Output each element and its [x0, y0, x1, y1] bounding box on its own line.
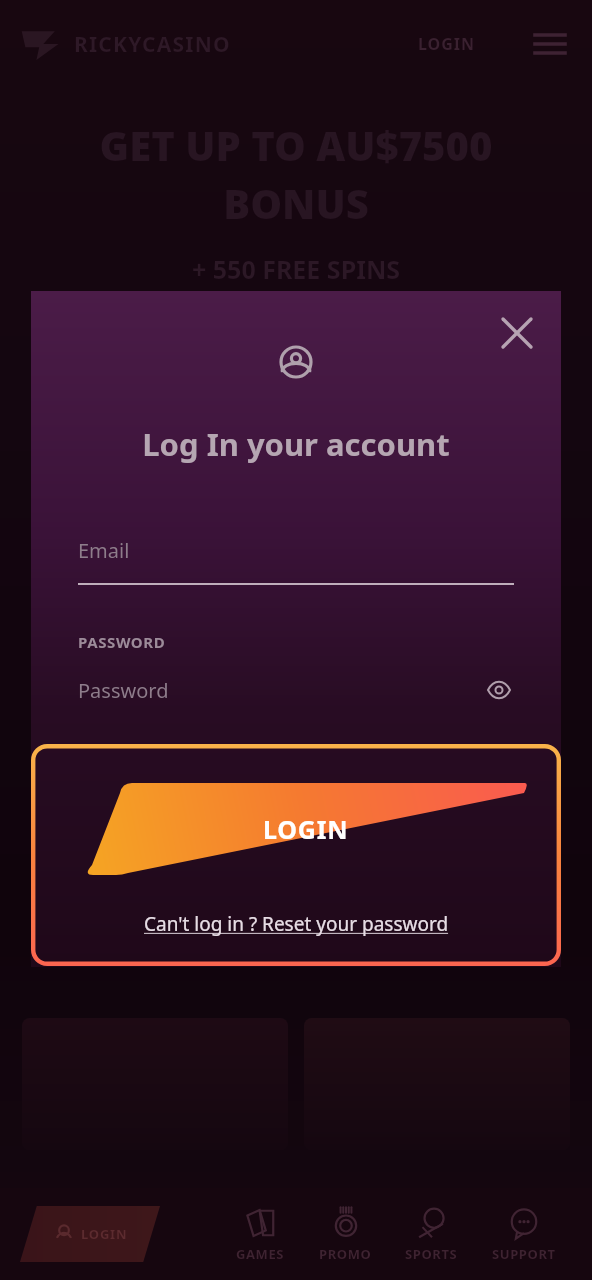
staticText: GAMES	[236, 1245, 285, 1263]
staticText: LOGIN	[263, 812, 349, 846]
button[interactable]: GAMES	[232, 1202, 289, 1267]
staticText: SPORTS	[405, 1245, 458, 1263]
button[interactable]: Menu	[530, 28, 570, 60]
button[interactable]: Login	[20, 1206, 160, 1262]
staticText: Can't log in ? Reset your password	[144, 911, 449, 937]
button[interactable]	[304, 1018, 570, 1150]
staticText: PASSWORD	[78, 632, 166, 652]
button[interactable]: Close	[497, 313, 537, 353]
button[interactable]: SPORTS	[401, 1202, 462, 1267]
staticText: + 550 FREE SPINS	[0, 252, 592, 286]
other: Ricky Casino logo	[18, 24, 64, 64]
staticText: RICKYCASINO	[74, 30, 231, 59]
staticText: Email	[78, 537, 130, 564]
button[interactable]: SUPPORT	[488, 1202, 560, 1267]
staticText: GET UP TO AU$7500 BONUS	[20, 118, 572, 230]
staticText: Password	[78, 677, 484, 704]
button[interactable]: Email	[78, 537, 514, 585]
staticText: SUPPORT	[492, 1245, 556, 1263]
staticText: LOGIN	[418, 33, 476, 55]
staticText: PROMO	[319, 1245, 372, 1263]
staticText: Log In your account	[31, 423, 561, 465]
button[interactable]: Can't log in ? Reset your password	[138, 907, 455, 941]
staticText: LOGIN	[81, 1225, 128, 1243]
button[interactable]: PROMO	[315, 1202, 376, 1267]
button[interactable]: Password	[78, 675, 514, 705]
button[interactable]: Show password	[484, 675, 514, 705]
button[interactable]: LOGIN	[410, 27, 484, 61]
button[interactable]: LOGIN	[83, 783, 529, 875]
